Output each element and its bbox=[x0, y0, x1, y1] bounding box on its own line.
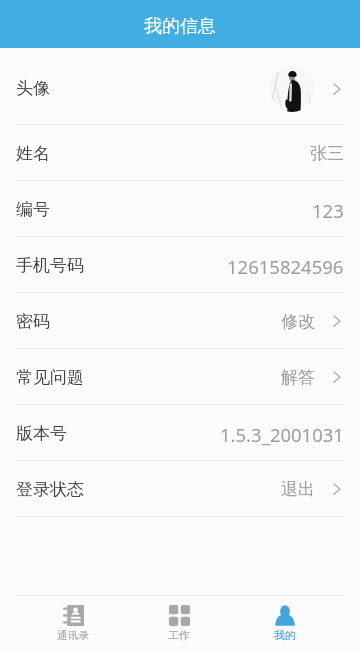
button[interactable]: 登录状态 bbox=[0, 461, 360, 517]
staticText: 版本号 bbox=[16, 423, 67, 444]
button[interactable]: 编号 bbox=[0, 181, 360, 237]
staticText: 编号 bbox=[16, 199, 50, 220]
staticText: 修改 bbox=[281, 311, 315, 332]
staticText: 12615824596 bbox=[227, 254, 344, 279]
staticText: 退出 bbox=[281, 479, 315, 500]
staticText: 通讯录 bbox=[57, 629, 90, 643]
staticText: 手机号码 bbox=[16, 255, 84, 276]
staticText: 登录状态 bbox=[16, 479, 84, 500]
button[interactable]: 通讯录 bbox=[20, 595, 126, 650]
staticText: 我的 bbox=[274, 629, 296, 643]
staticText: 姓名 bbox=[16, 143, 50, 164]
button[interactable]: 头像 bbox=[0, 48, 360, 125]
staticText: 头像 bbox=[16, 78, 50, 99]
button[interactable]: 我的 bbox=[232, 595, 338, 650]
button[interactable]: 手机号码 bbox=[0, 237, 360, 293]
staticText: 常见问题 bbox=[16, 367, 84, 388]
button[interactable]: 常见问题 bbox=[0, 349, 360, 405]
staticText: 张三 bbox=[310, 143, 344, 164]
staticText: 解答 bbox=[281, 367, 315, 388]
button[interactable]: 姓名 bbox=[0, 125, 360, 181]
staticText: 123 bbox=[312, 198, 344, 223]
staticText: 我的信息 bbox=[144, 15, 216, 38]
staticText: 1.5.3_2001031 bbox=[220, 422, 344, 447]
button[interactable]: 密码 bbox=[0, 293, 360, 349]
button[interactable]: 版本号 bbox=[0, 405, 360, 461]
button[interactable]: 工作 bbox=[126, 595, 232, 650]
staticText: 工作 bbox=[168, 629, 190, 643]
staticText: 密码 bbox=[16, 311, 50, 332]
